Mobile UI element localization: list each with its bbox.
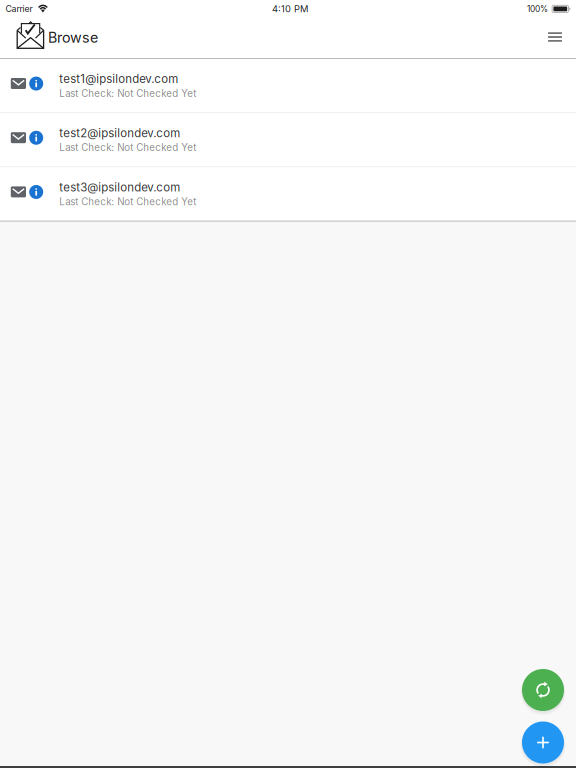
staticText: Last Check: Not Checked Yet: [59, 142, 196, 153]
button[interactable]: test3@ipsilondev.com: [0, 167, 576, 221]
button[interactable]: Menu: [538, 20, 572, 58]
staticText: Carrier: [5, 3, 32, 14]
button[interactable]: Add account: [519, 717, 567, 767]
staticText: 4:10 PM: [272, 3, 308, 15]
staticText: Browse: [48, 29, 98, 46]
staticText: 100%: [527, 4, 548, 14]
staticText: Last Check: Not Checked Yet: [59, 87, 196, 99]
staticText: test1@ipsilondev.com: [59, 72, 178, 86]
button[interactable]: test2@ipsilondev.com: [0, 113, 576, 166]
button[interactable]: Account info: [29, 72, 43, 94]
staticText: test2@ipsilondev.com: [59, 126, 180, 140]
button[interactable]: Account info: [29, 180, 43, 202]
button[interactable]: Refresh: [519, 665, 567, 715]
button[interactable]: test1@ipsilondev.com: [0, 59, 576, 112]
staticText: test3@ipsilondev.com: [59, 180, 180, 194]
button[interactable]: Account info: [29, 126, 43, 148]
staticText: Last Check: Not Checked Yet: [59, 196, 196, 208]
